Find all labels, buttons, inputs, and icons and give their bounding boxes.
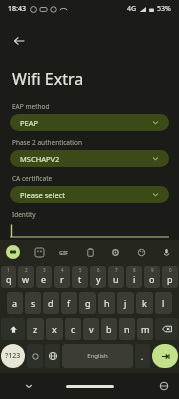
staticText: English (87, 352, 108, 360)
staticText: 9 (151, 267, 154, 273)
button[interactable]: k (136, 292, 153, 314)
staticText: d (48, 297, 54, 309)
staticText: i (133, 273, 136, 285)
staticText: 4G (127, 4, 137, 14)
staticText: 1 (7, 267, 10, 273)
staticText: EAP method (12, 102, 50, 111)
button[interactable]: Voice input (159, 245, 173, 259)
staticText: 3 (43, 267, 46, 273)
button[interactable]: Themes (134, 245, 148, 259)
staticText: b (106, 323, 112, 335)
button[interactable]: z (27, 318, 44, 340)
staticText: Identity (12, 210, 36, 219)
button[interactable]: 1 (1, 266, 16, 288)
button[interactable]: Stickers (32, 245, 46, 259)
staticText: PEAP (20, 118, 39, 128)
staticText: ?123 (5, 351, 21, 361)
button[interactable] (10, 222, 169, 238)
button[interactable]: v (83, 318, 99, 340)
staticText: q (6, 273, 12, 285)
staticText: 8 (133, 267, 136, 273)
button[interactable]: PEAP (10, 114, 169, 131)
staticText: 2 (25, 267, 28, 273)
staticText: a (12, 297, 18, 309)
staticText: 5 (79, 267, 82, 273)
button[interactable]: . (135, 344, 150, 368)
button[interactable]: j (117, 292, 134, 314)
staticText: 6 (97, 267, 100, 273)
button[interactable]: 0 (162, 266, 178, 288)
staticText: e (41, 273, 47, 285)
staticText: 18:43 (8, 4, 26, 14)
staticText: t (78, 273, 82, 285)
button[interactable]: Hide keyboard (22, 379, 36, 393)
button[interactable] (66, 385, 114, 388)
button[interactable]: 9 (144, 266, 160, 288)
staticText: m (141, 323, 150, 335)
button[interactable]: 5 (72, 266, 88, 288)
staticText: j (124, 297, 127, 309)
button[interactable]: a (7, 292, 23, 314)
staticText: MSCHAPV2 (20, 154, 60, 164)
button[interactable]: g (79, 292, 96, 314)
button[interactable]: n (119, 318, 135, 340)
button[interactable]: 2 (18, 266, 34, 288)
button[interactable]: d (43, 292, 59, 314)
staticText: w (22, 273, 30, 285)
button[interactable]: ?123 (1, 344, 25, 368)
button[interactable]: MSCHAPV2 (10, 150, 169, 167)
button[interactable]: Emoji (27, 344, 43, 368)
button[interactable]: Google Assistant (6, 245, 20, 259)
button[interactable]: l (155, 292, 172, 314)
staticText: h (104, 297, 110, 309)
staticText: Wifi Extra (12, 68, 84, 90)
staticText: Phase 2 authentication (12, 138, 82, 147)
button[interactable]: Clipboard (83, 245, 97, 259)
staticText: f (67, 297, 71, 309)
staticText: 4 (61, 267, 64, 273)
staticText: 7 (115, 267, 118, 273)
staticText: x (52, 323, 57, 335)
staticText: p (167, 273, 173, 285)
staticText: o (149, 273, 155, 285)
staticText: 0 (169, 267, 172, 273)
staticText: r (60, 273, 64, 285)
button[interactable]: Shift (1, 318, 25, 340)
staticText: z (33, 323, 38, 335)
staticText: k (142, 297, 147, 309)
button[interactable]: Change language (45, 344, 60, 368)
button[interactable]: Back (8, 30, 30, 52)
button[interactable]: Switch keyboard (157, 379, 171, 393)
button[interactable]: b (101, 318, 117, 340)
button[interactable]: 6 (90, 266, 106, 288)
staticText: l (162, 297, 165, 309)
staticText: n (124, 323, 130, 335)
button[interactable]: English (62, 344, 133, 368)
staticText: s (31, 297, 36, 309)
button[interactable]: s (25, 292, 41, 314)
button[interactable]: f (61, 292, 77, 314)
button[interactable]: 8 (126, 266, 142, 288)
staticText: 53% (157, 4, 171, 14)
staticText: y (96, 273, 101, 285)
button[interactable]: 4 (54, 266, 70, 288)
staticText: g (85, 297, 91, 309)
staticText: u (113, 273, 119, 285)
button[interactable]: Backspace (155, 318, 178, 340)
button[interactable]: Settings (108, 245, 122, 259)
staticText: Please select (20, 190, 65, 200)
button[interactable]: x (46, 318, 63, 340)
staticText: v (89, 323, 94, 335)
staticText: GIF (59, 249, 69, 256)
button[interactable]: h (98, 292, 115, 314)
button[interactable]: Enter (152, 344, 178, 368)
staticText: . (141, 351, 144, 362)
button[interactable]: c (65, 318, 81, 340)
button[interactable]: 7 (108, 266, 124, 288)
button[interactable]: Please select (10, 186, 169, 203)
button[interactable]: 3 (36, 266, 52, 288)
staticText: CA certificate (12, 174, 53, 183)
staticText: c (71, 323, 76, 335)
button[interactable]: GIF (57, 245, 71, 259)
button[interactable]: m (137, 318, 153, 340)
